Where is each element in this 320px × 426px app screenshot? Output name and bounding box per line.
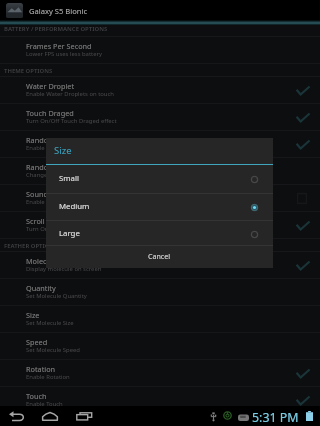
button[interactable]: Rotation bbox=[0, 360, 320, 387]
staticText: 5:31 PM bbox=[252, 409, 299, 426]
staticText: Turn On/Off Scroll bbox=[26, 225, 76, 233]
staticText: Medium bbox=[59, 201, 90, 212]
button[interactable]: Small bbox=[46, 166, 273, 193]
staticText: Random Colors bbox=[26, 135, 79, 145]
staticText: Enable Rotation bbox=[26, 373, 70, 381]
staticText: Turn On/Off Touch Draged effect bbox=[26, 117, 117, 125]
button[interactable]: Random Theme bbox=[0, 158, 320, 185]
staticText: Large bbox=[59, 228, 80, 239]
button[interactable]: Recent apps bbox=[70, 407, 98, 426]
staticText: Enable Random Colors bbox=[26, 144, 89, 152]
staticText: Galaxy S5 Bionic bbox=[29, 6, 88, 16]
staticText: Size bbox=[54, 144, 72, 157]
staticText: Random Theme bbox=[26, 162, 81, 172]
staticText: FEATHER OPTIONS bbox=[4, 242, 58, 250]
button[interactable]: Cancel bbox=[46, 246, 273, 267]
staticText: Sound bbox=[26, 189, 48, 199]
staticText: Small bbox=[59, 173, 79, 184]
button[interactable]: Frames Per Second bbox=[0, 37, 320, 64]
staticText: Scroll bbox=[26, 216, 45, 226]
button[interactable]: Scroll bbox=[0, 212, 320, 239]
staticText: Touch Draged bbox=[26, 108, 74, 118]
staticText: Change Theme Randomly bbox=[26, 171, 98, 179]
staticText: Size bbox=[26, 310, 40, 320]
button[interactable]: Home bbox=[36, 407, 64, 426]
button[interactable]: Medium bbox=[46, 194, 273, 221]
staticText: Cancel bbox=[148, 251, 171, 261]
staticText: Enable Touch bbox=[26, 400, 63, 408]
button[interactable]: Water Droplet bbox=[0, 77, 320, 104]
button[interactable]: Touch bbox=[0, 387, 320, 406]
button[interactable]: Speed bbox=[0, 333, 320, 360]
staticText: Lower FPS uses less battery bbox=[26, 50, 102, 58]
button[interactable]: Random Colors bbox=[0, 131, 320, 158]
staticText: Enable Sound bbox=[26, 198, 64, 206]
button[interactable]: Touch Draged bbox=[0, 104, 320, 131]
staticText: Water Droplet bbox=[26, 81, 75, 91]
button[interactable]: Quantity bbox=[0, 279, 320, 306]
staticText: Set Molecule Quantity bbox=[26, 292, 87, 300]
button[interactable]: Molecules bbox=[0, 252, 320, 279]
staticText: Molecules bbox=[26, 256, 61, 266]
staticText: Frames Per Second bbox=[26, 41, 92, 51]
button[interactable]: Large bbox=[46, 221, 273, 248]
button[interactable]: Sound bbox=[0, 185, 320, 212]
staticText: Quantity bbox=[26, 283, 56, 293]
staticText: Speed bbox=[26, 337, 48, 347]
button[interactable]: App icon bbox=[6, 3, 23, 18]
staticText: Touch bbox=[26, 391, 47, 401]
staticText: Display molecule on screen bbox=[26, 265, 102, 273]
staticText: Set Molecule Size bbox=[26, 319, 74, 327]
staticText: Enable Water Droplets on touch bbox=[26, 90, 114, 98]
button[interactable]: Back bbox=[2, 407, 31, 426]
staticText: BATTERY / PERFORMANCE OPTIONS bbox=[4, 25, 108, 33]
button[interactable]: Size bbox=[0, 306, 320, 333]
staticText: Rotation bbox=[26, 364, 56, 374]
staticText: Set Molecule Speed bbox=[26, 346, 80, 354]
staticText: THEME OPTIONS bbox=[4, 67, 53, 75]
